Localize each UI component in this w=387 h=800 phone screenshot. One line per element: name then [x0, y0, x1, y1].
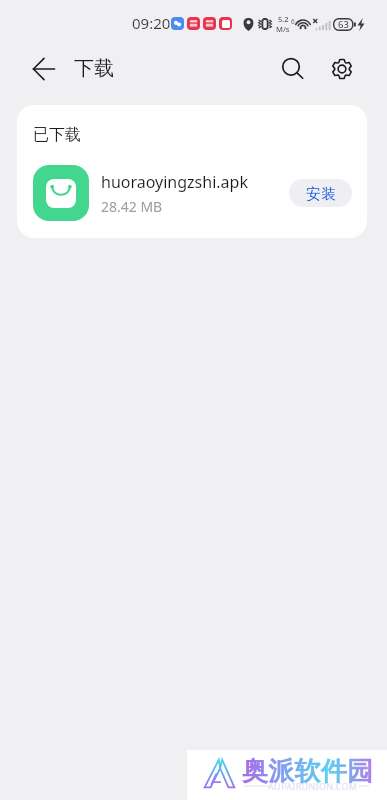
staticText: 63: [338, 18, 349, 31]
staticText: 28.42 MB: [101, 197, 163, 216]
staticText: huoraoyingzshi.apk: [101, 171, 248, 193]
staticText: 已下载: [33, 125, 81, 145]
button[interactable]: Settings: [320, 47, 364, 91]
staticText: 5.2: [278, 14, 289, 24]
button[interactable]: 安装: [289, 179, 352, 207]
staticText: AUPAIRUNION.COM: [268, 780, 358, 792]
staticText: 6: [291, 17, 295, 26]
staticText: M/s: [276, 24, 290, 34]
staticText: 奥派软件园: [242, 755, 373, 788]
staticText: 下载: [74, 56, 114, 81]
button[interactable]: Search: [271, 47, 315, 91]
button[interactable]: Back: [22, 47, 66, 91]
button[interactable]: huoraoyingzshi.apk: [33, 157, 352, 229]
staticText: 安装: [306, 185, 336, 204]
staticText: 09:20: [132, 13, 171, 33]
